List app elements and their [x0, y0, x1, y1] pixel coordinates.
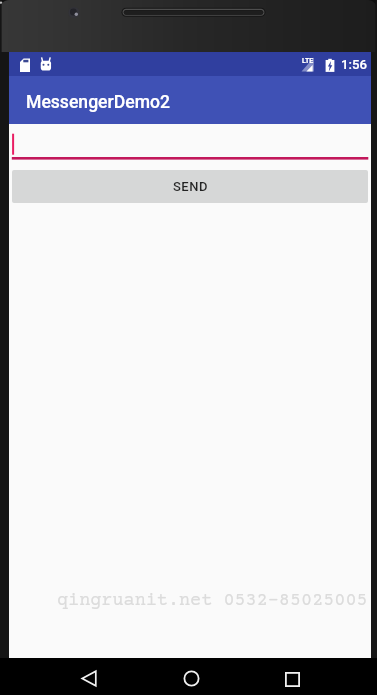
button[interactable]: Home [166, 660, 216, 695]
staticText: MessengerDemo2 [26, 92, 170, 113]
staticText: 1:56 [341, 57, 367, 72]
button[interactable] [9, 124, 371, 160]
staticText: LTE [302, 57, 314, 65]
button[interactable]: Recents [267, 661, 317, 695]
button[interactable]: Back [64, 660, 114, 695]
staticText: qingruanit.net 0532-85025005 [57, 591, 368, 612]
button[interactable]: SEND [12, 170, 368, 203]
staticText: SEND [173, 179, 208, 194]
